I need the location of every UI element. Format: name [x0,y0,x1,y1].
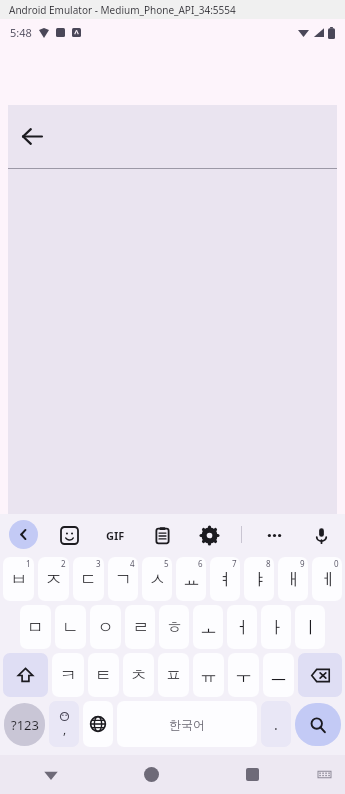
button[interactable]: ㅡ [263,653,294,697]
staticText: 9 [300,558,305,569]
staticText: ㅌ [95,665,112,686]
staticText: ㅣ [302,617,319,638]
button[interactable]: Recents [202,755,303,794]
staticText: ㄴ [62,617,79,638]
staticText: 0 [334,558,339,569]
button[interactable]: ?123 [4,703,45,746]
button[interactable]: ㅐ [278,557,308,601]
staticText: ㅡ [270,665,287,686]
button[interactable]: ㅓ [227,605,257,649]
button[interactable]: Back [8,105,337,168]
staticText: 한국어 [169,717,205,732]
button[interactable]: . [261,701,291,747]
button[interactable]: Backspace [298,653,342,697]
button[interactable]: ㄹ [125,605,155,649]
button[interactable]: ㅠ [193,653,224,697]
staticText: ?123 [11,716,39,734]
staticText: ㅜ [235,665,252,686]
button[interactable]: ㅔ [312,557,342,601]
button[interactable]: ㅈ [38,557,69,601]
staticText: ㅁ [27,617,44,638]
button[interactable]: ㄷ [73,557,104,601]
button[interactable]: Stickers [54,520,84,550]
staticText: ㅊ [130,665,147,686]
button[interactable]: Clipboard [147,520,177,550]
button[interactable]: Settings [194,520,224,550]
button[interactable]: ㅁ [20,605,51,649]
button[interactable]: ㅗ [193,605,223,649]
button[interactable]: Home [101,755,202,794]
staticText: ㄱ [115,569,132,590]
staticText: ㄷ [80,569,97,590]
button[interactable]: ㅜ [228,653,259,697]
button[interactable]: Change language [83,701,113,747]
button[interactable]: ㅊ [123,653,154,697]
button[interactable]: Shift [3,653,48,697]
staticText: 5:48 [10,25,32,40]
staticText: ㅕ [217,569,234,590]
staticText: ㅗ [200,617,217,638]
button[interactable]: ㅅ [142,557,172,601]
button[interactable]: ㅎ [159,605,189,649]
button[interactable]: GIF [100,520,130,550]
staticText: ㅛ [183,569,200,590]
staticText: ㅅ [149,569,166,590]
staticText: 8 [266,558,271,569]
button[interactable]: Voice input [306,520,336,550]
staticText: 7 [232,558,237,569]
staticText: 2 [61,558,66,569]
button[interactable]: ㅛ [176,557,206,601]
button[interactable]: Search [295,703,341,746]
staticText: ㅐ [285,569,302,590]
button[interactable]: ㅑ [244,557,274,601]
staticText: 3 [96,558,101,569]
staticText: ㅍ [165,665,182,686]
button[interactable]: ㅂ [3,557,34,601]
button[interactable]: 한국어 [117,701,257,747]
staticText: ㅇ [97,617,114,638]
staticText: ㅔ [319,569,336,590]
button[interactable]: ㅍ [158,653,189,697]
staticText: GIF [106,528,125,543]
staticText: 1 [26,558,31,569]
button[interactable]: ㅋ [52,653,84,697]
button[interactable]: ㅕ [210,557,240,601]
staticText: ㅠ [200,665,217,686]
staticText: ㅓ [234,617,251,638]
staticText: ㅑ [251,569,268,590]
staticText: 6 [198,558,203,569]
button[interactable]: ㄱ [108,557,138,601]
staticText: , [63,721,67,737]
staticText: ㅎ [166,617,183,638]
button[interactable]: Keyboard switcher [303,755,345,794]
staticText: ㅂ [10,569,27,590]
button[interactable]: ㅇ [90,605,121,649]
button[interactable]: ㅣ [295,605,325,649]
staticText: 5 [164,558,169,569]
button[interactable]: ㅏ [261,605,291,649]
staticText: ㅈ [45,569,62,590]
button[interactable]: Back [0,755,101,794]
staticText: . [274,715,278,734]
staticText: 4 [130,558,135,569]
staticText: Android Emulator - Medium_Phone_API_34:5… [9,3,236,17]
button[interactable]: Expand toolbar [9,520,38,549]
button[interactable]: More options [259,520,289,550]
button[interactable]: Emoji and comma [49,701,79,747]
button[interactable]: ㅌ [88,653,119,697]
button[interactable]: ㄴ [55,605,86,649]
staticText: ㅏ [268,617,285,638]
staticText: ㅋ [60,665,77,686]
staticText: ㄹ [132,617,149,638]
